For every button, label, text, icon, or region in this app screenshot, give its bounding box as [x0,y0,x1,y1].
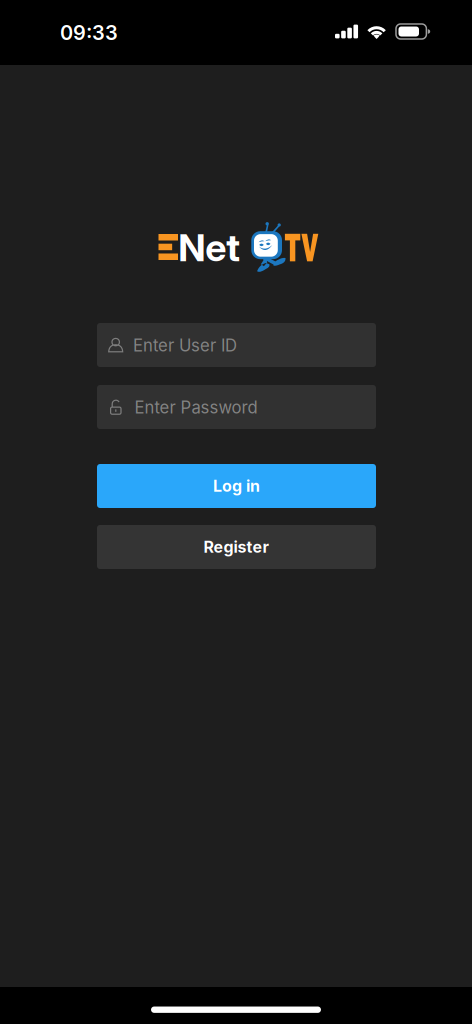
button[interactable]: Register [97,525,376,569]
staticText: Register [203,537,269,557]
staticText: Net [178,225,240,270]
staticText: Enter User ID [133,335,237,356]
staticText: Log in [213,476,260,496]
button[interactable]: Enter Password [97,385,376,429]
staticText: 09:33 [60,21,118,45]
button[interactable]: Enter User ID [97,323,376,367]
button[interactable]: Log in [97,464,376,508]
staticText: Enter Password [134,397,257,418]
